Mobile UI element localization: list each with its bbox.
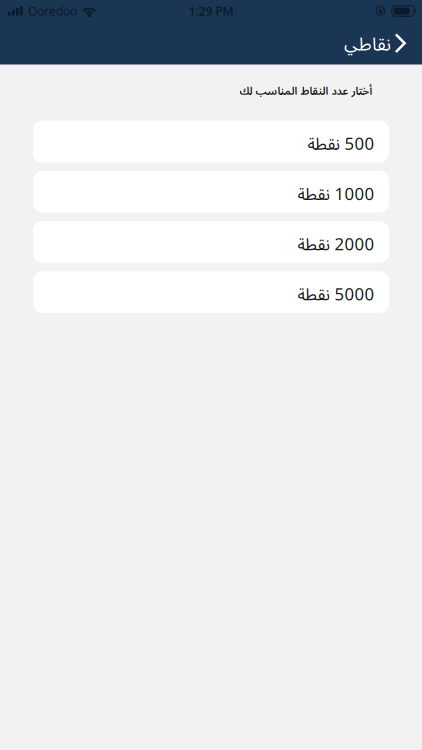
staticText: Ooredoo (28, 3, 77, 19)
staticText: نقاطي (343, 30, 390, 56)
staticText: 2000 نقطة (297, 232, 374, 255)
staticText: أختار عدد النقاط المناسب لك (239, 83, 372, 98)
staticText: 1000 نقطة (297, 182, 374, 205)
button[interactable]: 1000 نقطة (33, 171, 389, 213)
button[interactable]: 2000 نقطة (33, 221, 389, 263)
staticText: 500 نقطة (307, 132, 374, 155)
button[interactable]: نقاطي (0, 22, 422, 64)
staticText: 1:29 PM (188, 3, 233, 19)
button[interactable]: 5000 نقطة (33, 271, 389, 313)
button[interactable]: 500 نقطة (33, 121, 389, 162)
staticText: 5000 نقطة (297, 282, 374, 305)
